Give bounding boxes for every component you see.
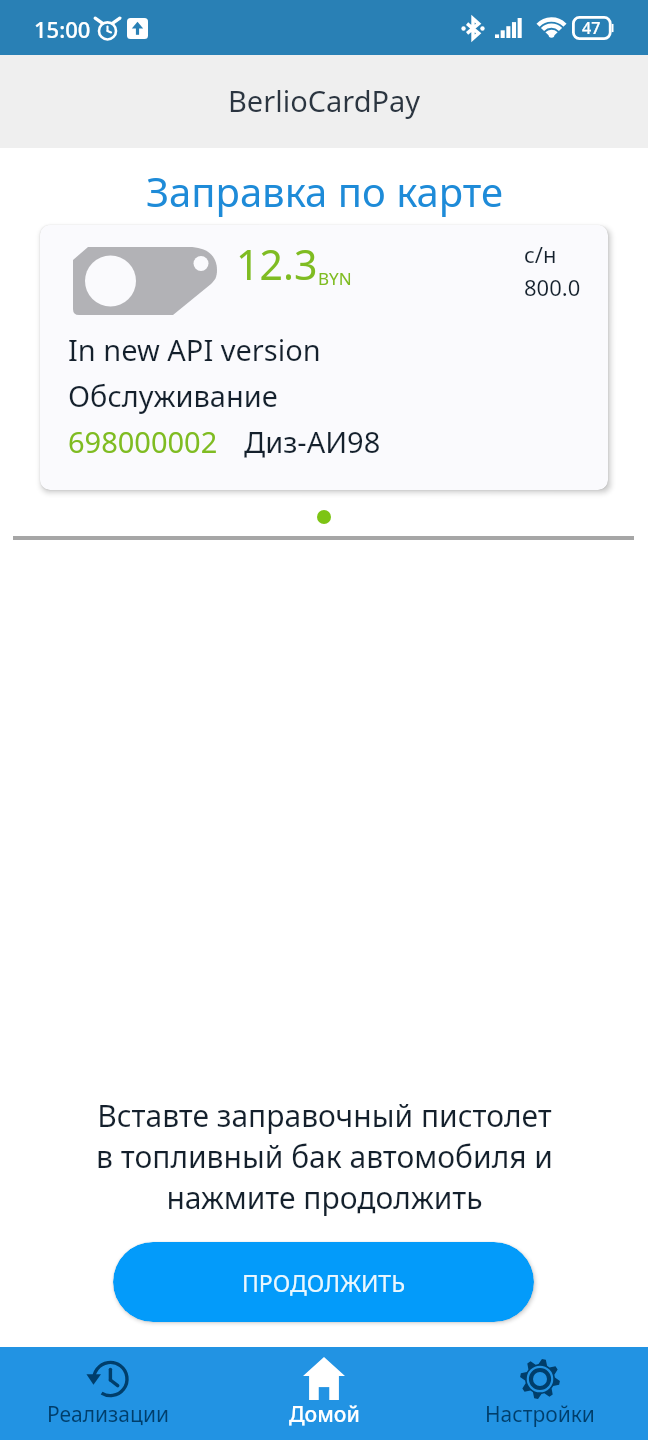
staticText: BYN <box>318 267 352 290</box>
staticText: с/н <box>524 239 557 269</box>
button[interactable]: 12.3 <box>40 225 608 490</box>
button[interactable]: Настройки <box>432 1347 648 1440</box>
staticText: Заправка по карте <box>146 164 503 218</box>
staticText: Настройки <box>485 1400 595 1429</box>
staticText: 47 <box>582 17 601 39</box>
staticText: ПРОДОЛЖИТЬ <box>242 1267 406 1298</box>
button[interactable]: Реализации <box>0 1347 216 1440</box>
staticText: Вставте заправочный пистолет в топливный… <box>96 1095 553 1218</box>
staticText: Диз-АИ98 <box>244 422 381 461</box>
staticText: 800.0 <box>524 272 581 302</box>
other: Настройки <box>520 1359 560 1399</box>
other: Домой <box>303 1357 345 1400</box>
staticText: Домой <box>289 1400 360 1429</box>
other: Реализации <box>88 1360 128 1398</box>
staticText: 698000002 <box>68 422 218 461</box>
staticText: 12.3 <box>236 236 318 292</box>
button[interactable]: Домой <box>216 1347 432 1440</box>
staticText: In new API version <box>68 330 321 369</box>
staticText: Реализации <box>47 1400 169 1429</box>
staticText: Обслуживание <box>68 376 278 415</box>
staticText: BerlioCardPay <box>228 81 421 120</box>
button[interactable]: ПРОДОЛЖИТЬ <box>113 1242 534 1322</box>
staticText: 15:00 <box>34 14 91 44</box>
